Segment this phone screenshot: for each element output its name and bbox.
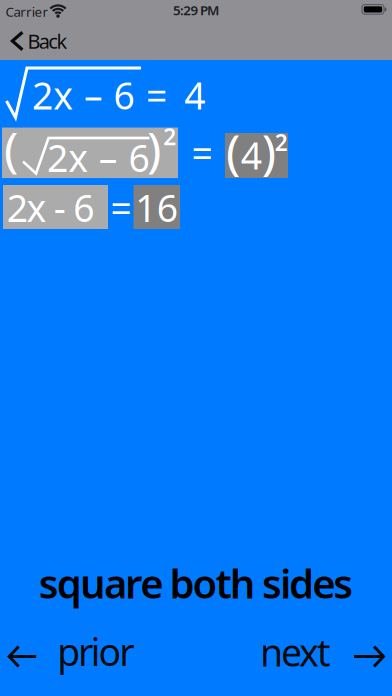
button[interactable]: next xyxy=(260,627,385,677)
staticText: ) xyxy=(147,117,161,180)
staticText: 2x – 6 xyxy=(47,133,149,182)
staticText: Carrier xyxy=(6,3,48,20)
staticText: prior xyxy=(57,627,134,676)
staticText: 2 xyxy=(163,121,176,151)
staticText: = xyxy=(110,183,131,232)
button[interactable]: prior xyxy=(8,627,134,676)
staticText: ( xyxy=(4,117,18,180)
staticText: 2x – 6 xyxy=(32,70,135,120)
button[interactable]: Back xyxy=(12,28,68,54)
staticText: ) xyxy=(262,119,276,183)
staticText: square both sides xyxy=(39,556,353,609)
staticText: 16 xyxy=(135,183,178,232)
staticText: = xyxy=(146,70,167,120)
staticText: 2x - 6 xyxy=(7,183,94,232)
staticText: 4 xyxy=(184,70,205,120)
staticText: 4 xyxy=(241,130,262,180)
staticText: Back xyxy=(27,28,68,54)
staticText: = xyxy=(191,128,212,177)
staticText: next xyxy=(260,627,330,677)
staticText: ( xyxy=(226,119,240,183)
staticText: 5:29 PM xyxy=(173,1,219,19)
staticText: 2 xyxy=(275,127,288,157)
